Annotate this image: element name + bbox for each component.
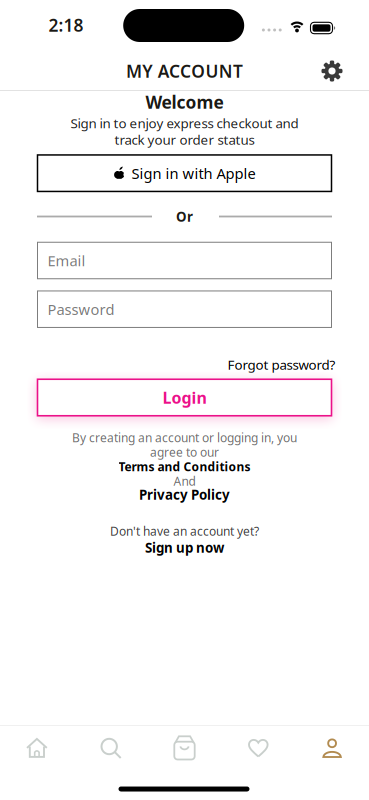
staticText: 2:18 bbox=[48, 13, 83, 36]
button[interactable]: Terms and Conditions bbox=[118, 458, 250, 474]
staticText: And bbox=[173, 473, 195, 489]
staticText: Password bbox=[47, 299, 114, 319]
staticText: Forgot password? bbox=[227, 356, 335, 373]
staticText: Welcome bbox=[145, 90, 223, 113]
staticText: Email bbox=[47, 251, 85, 270]
staticText: Don't have an account yet? bbox=[110, 523, 259, 539]
button[interactable]: Forgot password? bbox=[0, 356, 369, 373]
button[interactable]: Settings bbox=[321, 60, 342, 81]
button[interactable]: Sign in with Apple bbox=[37, 155, 331, 191]
staticText: Login bbox=[162, 387, 206, 408]
staticText: Terms and Conditions bbox=[118, 458, 250, 474]
button[interactable]: Password bbox=[37, 291, 331, 327]
button[interactable]: Email bbox=[37, 242, 331, 279]
button[interactable]: Account bbox=[321, 738, 343, 759]
staticText: By creating an account or logging in, yo… bbox=[72, 429, 297, 445]
button[interactable]: Home bbox=[25, 736, 48, 759]
staticText: Sign in to enjoy express checkout and bbox=[70, 114, 298, 132]
button[interactable]: Login bbox=[37, 379, 331, 416]
staticText: Sign in with Apple bbox=[131, 163, 255, 183]
button[interactable]: Sign up now bbox=[145, 539, 224, 556]
staticText: track your order status bbox=[114, 131, 254, 148]
staticText: agree to our bbox=[150, 444, 219, 460]
staticText: Sign up now bbox=[145, 539, 224, 556]
button[interactable]: Search bbox=[99, 736, 122, 759]
button[interactable]: Privacy Policy bbox=[139, 486, 230, 503]
button[interactable]: Wishlist bbox=[247, 736, 270, 759]
staticText: MY ACCOUNT bbox=[126, 59, 243, 82]
staticText: Or bbox=[176, 208, 193, 225]
staticText: Privacy Policy bbox=[139, 486, 230, 503]
button[interactable]: Bag bbox=[172, 734, 196, 760]
